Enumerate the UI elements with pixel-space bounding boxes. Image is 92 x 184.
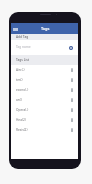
button[interactable]: Resis(2) — [11, 125, 78, 135]
button[interactable]: Delete — [70, 77, 74, 83]
button[interactable]: Delete — [70, 97, 74, 103]
button[interactable]: Delete — [70, 67, 74, 73]
button[interactable]: Delete — [70, 127, 74, 133]
button[interactable]: Delete — [70, 107, 74, 113]
staticText: Opera(-) — [16, 108, 70, 112]
staticText: an() — [16, 98, 70, 102]
staticText: Tags List — [16, 58, 30, 62]
button[interactable]: Delete — [70, 117, 74, 123]
button[interactable]: econo(-) — [11, 85, 78, 95]
staticText: Hea(2) — [16, 118, 70, 122]
button[interactable]: Delete — [70, 87, 74, 93]
button[interactable]: Hea(2) — [11, 115, 78, 125]
staticText: Tag name — [16, 45, 31, 49]
staticText: econo(-) — [16, 88, 70, 92]
button[interactable]: Menu — [12, 25, 19, 33]
staticText: Resis(2) — [16, 128, 70, 132]
button[interactable]: Airc(-) — [11, 65, 78, 75]
button[interactable]: Opera(-) — [11, 105, 78, 115]
staticText: Add Tag — [16, 35, 29, 39]
button[interactable]: an() — [11, 95, 78, 105]
button[interactable]: Add tag — [69, 46, 73, 50]
button[interactable]: tes() — [11, 75, 78, 85]
staticText: Tags — [41, 26, 50, 31]
staticText: tes() — [16, 78, 70, 82]
staticText: Airc(-) — [16, 68, 70, 72]
